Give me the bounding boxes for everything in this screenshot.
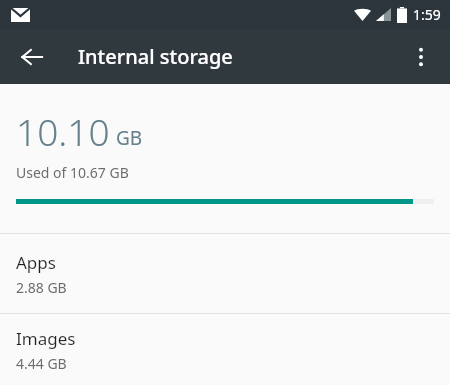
staticText: 1:59 [413,5,441,24]
button[interactable]: Images [0,314,450,385]
staticText: Images [16,327,76,350]
staticText: Apps [16,251,56,274]
staticText: 4.44 GB [16,354,67,373]
staticText: Internal storage [78,43,233,70]
staticText: Used of 10.67 GB [16,163,129,182]
button[interactable]: Back [8,33,56,81]
staticText: GB [116,125,143,151]
button[interactable]: More options [398,34,444,80]
staticText: 2.88 GB [16,278,67,297]
staticText: 10.10 [16,106,110,156]
button[interactable]: Apps [0,234,450,313]
